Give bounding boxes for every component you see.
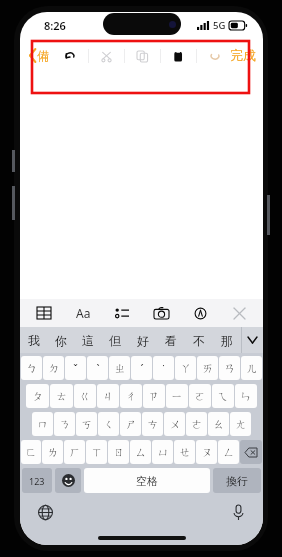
button[interactable]: ㄛ [189,384,211,408]
button[interactable]: ㄒ [86,440,107,464]
button[interactable]: Back [29,48,49,63]
button[interactable]: List [107,300,137,326]
staticText: ㄤ [235,417,247,431]
button[interactable]: 空格 [84,468,210,493]
button[interactable]: ㄤ [230,412,251,436]
button[interactable]: 123 [22,468,52,493]
button[interactable]: Undo [52,43,88,69]
staticText: ㄏ [69,445,81,459]
button[interactable]: ㄙ [130,440,151,464]
button[interactable]: ㄌ [42,440,63,464]
button[interactable]: Close [224,300,254,326]
staticText: ˙ [162,361,165,376]
button[interactable]: Dictation [227,501,249,523]
button[interactable]: 換行 [213,468,261,493]
button[interactable]: Camera [146,300,176,326]
staticText: 我 [28,333,40,348]
button[interactable]: 我 [20,327,47,353]
staticText: ㄇ [37,417,49,431]
staticText: ㄋ [59,417,71,431]
button[interactable]: Expand [241,327,263,353]
button[interactable]: ㄊ [50,384,73,408]
staticText: ㄎ [81,417,93,431]
button[interactable]: ㄈ [21,440,41,464]
staticText: ˋ [96,361,100,376]
staticText: ㄓ [114,361,126,375]
button[interactable]: ㄔ [120,384,142,408]
button[interactable]: ㄦ [241,356,262,380]
button[interactable]: ㄘ [142,412,163,436]
staticText: ㄛ [194,389,206,403]
button[interactable]: ㄐ [97,384,119,408]
button[interactable]: Table [29,300,59,326]
button[interactable]: ㄝ [174,440,195,464]
staticText: 8:26 [44,18,66,33]
staticText: 你 [55,333,67,348]
staticText: ㄈ [25,445,37,459]
staticText: 好 [137,333,149,348]
button[interactable]: Copy [125,43,160,69]
button[interactable]: ㄟ [212,384,234,408]
button[interactable]: ㄚ [175,356,196,380]
staticText: ㄘ [147,417,159,431]
staticText: ㄨ [169,417,181,431]
button[interactable]: ㄠ [208,412,229,436]
staticText: 這 [82,333,94,348]
button[interactable]: ㄖ [108,440,129,464]
button[interactable]: 但 [101,327,129,353]
button[interactable]: Paste [161,43,196,69]
button[interactable]: Emoji [55,468,81,493]
button[interactable]: ˋ [87,356,108,380]
button[interactable]: ㄇ [32,412,53,436]
button[interactable]: Delete [240,440,262,464]
button[interactable]: ㄡ [196,440,217,464]
button[interactable]: ㄞ [197,356,218,380]
button[interactable]: ㄨ [164,412,185,436]
button[interactable]: ˙ [153,356,174,380]
button[interactable]: ㄉ [43,356,64,380]
other: Expand [248,337,257,343]
button[interactable]: ˇ [65,356,86,380]
staticText: ㄜ [191,417,203,431]
button[interactable]: Aa [68,300,98,326]
button[interactable]: 這 [74,327,101,353]
staticText: ㄩ [157,445,169,459]
staticText: 備 [37,48,49,63]
button[interactable]: 看 [157,327,185,353]
button[interactable]: 那 [213,327,241,353]
staticText: 123 [29,475,45,487]
button[interactable]: 好 [129,327,157,353]
button[interactable]: ㄏ [64,440,85,464]
button[interactable]: ㄆ [26,384,49,408]
button[interactable]: 你 [47,327,74,353]
staticText: ㄌ [47,445,59,459]
button[interactable]: Markup [185,300,215,326]
button[interactable]: ㄢ [219,356,240,380]
button[interactable]: ㄩ [152,440,173,464]
button[interactable]: ㄍ [74,384,96,408]
staticText: ㄧ [171,389,183,403]
button[interactable]: ㄥ [218,440,239,464]
staticText: ㄍ [79,389,91,403]
button[interactable]: ㄣ [235,384,257,408]
button[interactable]: Cut [89,43,124,69]
button[interactable]: 不 [185,327,213,353]
other: Back [29,49,37,62]
button[interactable]: ㄧ [166,384,188,408]
staticText: ㄣ [240,389,252,403]
button[interactable]: ㄗ [143,384,165,408]
button[interactable]: ㄅ [21,356,42,380]
button[interactable]: ˊ [131,356,152,380]
button[interactable]: ㄕ [120,412,141,436]
button[interactable]: Redo [197,43,232,69]
button[interactable]: ㄜ [186,412,207,436]
staticText: 但 [109,333,121,348]
button[interactable]: ㄓ [109,356,130,380]
button[interactable]: Switch keyboard [34,501,56,523]
button[interactable]: ㄋ [54,412,75,436]
button[interactable]: ㄑ [98,412,119,436]
staticText: 那 [221,333,233,348]
button[interactable]: ㄎ [76,412,97,436]
button[interactable]: 完成 [230,47,256,63]
staticText: ㄦ [246,361,258,375]
